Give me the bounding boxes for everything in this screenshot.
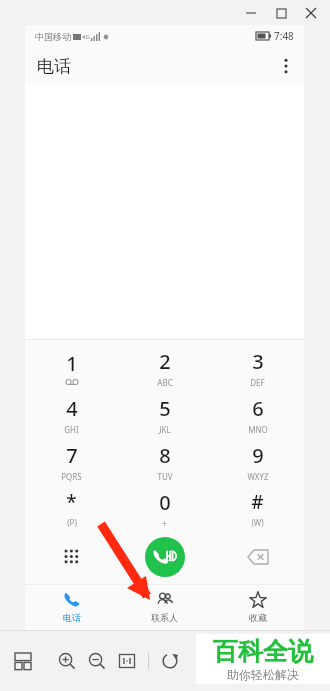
staticText: (P) xyxy=(67,517,77,528)
button[interactable]: 9 xyxy=(211,438,304,485)
button[interactable]: Refresh xyxy=(157,648,183,674)
button[interactable]: 5 xyxy=(118,391,211,438)
staticText: 6 xyxy=(252,395,264,422)
staticText: GHI xyxy=(64,424,79,435)
staticText: 0 xyxy=(159,489,171,516)
staticText: 电话 xyxy=(63,612,81,623)
button[interactable]: More options xyxy=(268,48,304,84)
button[interactable]: Close xyxy=(296,1,326,25)
button[interactable]: 8 xyxy=(118,438,211,485)
staticText: 5 xyxy=(159,395,171,422)
button[interactable]: 电话 xyxy=(25,584,118,630)
staticText: 1 xyxy=(66,350,78,377)
staticText: 3 xyxy=(252,348,264,375)
button[interactable]: Layout xyxy=(10,648,36,674)
staticText: JKL xyxy=(159,424,171,435)
button[interactable]: Delete xyxy=(211,532,304,582)
button[interactable]: 联系人 xyxy=(118,584,211,630)
staticText: ABC xyxy=(157,377,173,388)
button[interactable]: 2 xyxy=(118,344,211,391)
button[interactable]: Minimize xyxy=(236,1,266,25)
staticText: 8 xyxy=(159,442,171,469)
staticText: TUV xyxy=(157,471,173,482)
staticText: + xyxy=(162,518,167,529)
staticText: 7:48 xyxy=(274,29,294,43)
staticText: 4G xyxy=(82,33,90,41)
staticText: WXYZ xyxy=(247,471,269,482)
staticText: * xyxy=(66,489,77,515)
button[interactable]: 1 xyxy=(25,344,118,391)
staticText: 电话 xyxy=(37,56,71,77)
staticText: 百科全说 xyxy=(213,636,313,667)
button[interactable]: Call HD xyxy=(145,537,185,577)
button[interactable]: Actual size xyxy=(114,648,140,674)
staticText: 9 xyxy=(252,442,264,469)
staticText: 7 xyxy=(66,442,78,469)
button[interactable]: Zoom out xyxy=(84,648,110,674)
button[interactable]: Maximize xyxy=(266,1,296,25)
staticText: MNO xyxy=(248,424,268,435)
button[interactable]: 0 xyxy=(118,485,211,532)
button[interactable]: Zoom in xyxy=(54,648,80,674)
button[interactable]: * xyxy=(25,485,118,532)
button[interactable]: 3 xyxy=(211,344,304,391)
button[interactable]: 6 xyxy=(211,391,304,438)
staticText: 4 xyxy=(66,395,78,422)
staticText: 助你轻松解决 xyxy=(227,667,299,682)
staticText: 收藏 xyxy=(249,612,267,623)
staticText: (W) xyxy=(251,517,264,528)
button[interactable]: 4 xyxy=(25,391,118,438)
button[interactable]: Keypad xyxy=(25,532,118,582)
button[interactable]: # xyxy=(211,485,304,532)
button[interactable]: 7 xyxy=(25,438,118,485)
button[interactable]: 收藏 xyxy=(211,584,304,630)
staticText: DEF xyxy=(250,377,265,388)
staticText: 2 xyxy=(159,348,171,375)
staticText: 中国移动 xyxy=(35,31,71,42)
staticText: 联系人 xyxy=(151,612,178,623)
staticText: # xyxy=(251,489,264,515)
staticText: PQRS xyxy=(61,471,82,482)
